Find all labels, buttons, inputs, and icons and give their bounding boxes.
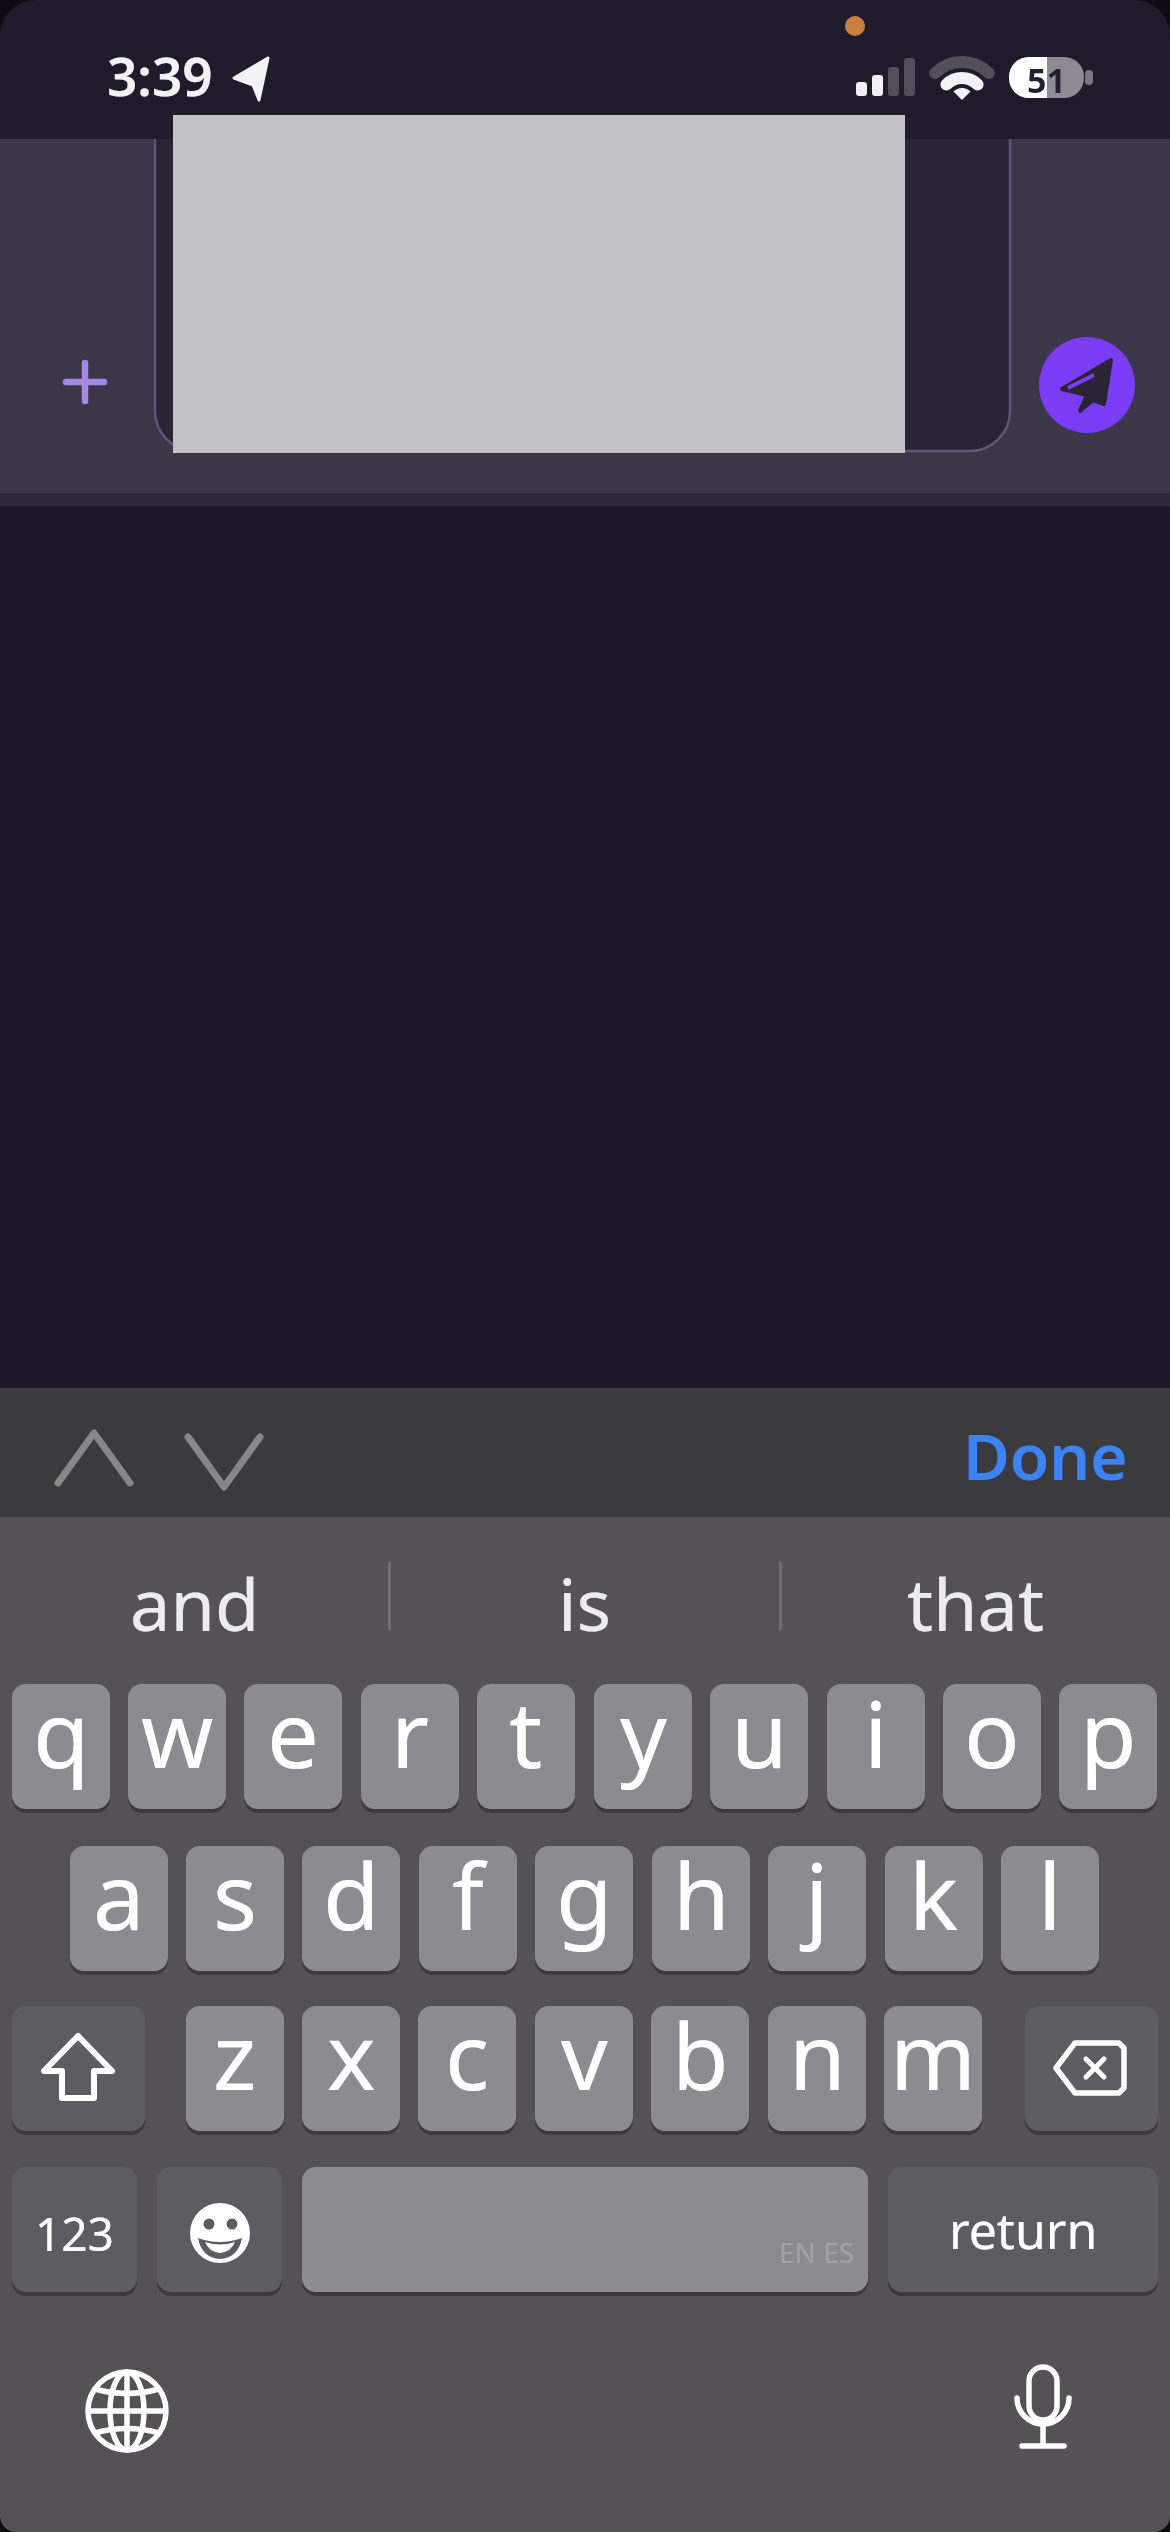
button[interactable]: z: [186, 2006, 284, 2131]
button[interactable]: j: [768, 1846, 866, 1971]
button[interactable]: p: [1059, 1684, 1157, 1809]
button[interactable]: f: [419, 1846, 517, 1971]
button[interactable]: w: [128, 1684, 226, 1809]
staticText: c: [445, 2006, 490, 2117]
button[interactable]: c: [418, 2006, 516, 2131]
button[interactable]: g: [535, 1846, 633, 1971]
staticText: a: [93, 1846, 145, 1957]
button[interactable]: o: [943, 1684, 1041, 1809]
staticText: p: [1080, 1684, 1137, 1795]
button[interactable]: that: [780, 1545, 1170, 1660]
button[interactable]: x: [302, 2006, 400, 2131]
staticText: v: [561, 2006, 608, 2117]
button[interactable]: t: [477, 1684, 575, 1809]
button[interactable]: [1025, 2006, 1158, 2131]
button[interactable]: e: [244, 1684, 342, 1809]
staticText: j: [805, 1846, 829, 1957]
button[interactable]: u: [710, 1684, 808, 1809]
staticText: s: [213, 1846, 258, 1957]
staticText: u: [731, 1684, 788, 1795]
button[interactable]: return: [888, 2167, 1158, 2292]
staticText: l: [1038, 1846, 1062, 1957]
staticText: o: [964, 1684, 1020, 1795]
button[interactable]: is: [390, 1545, 780, 1660]
button[interactable]: a: [70, 1846, 168, 1971]
button[interactable]: k: [885, 1846, 983, 1971]
button[interactable]: [60, 2345, 195, 2480]
staticText: m: [890, 2006, 977, 2117]
staticText: that: [907, 1554, 1044, 1652]
staticText: n: [789, 2006, 846, 2117]
staticText: x: [327, 2006, 376, 2117]
staticText: t: [509, 1684, 543, 1795]
button[interactable]: v: [535, 2006, 633, 2131]
staticText: is: [558, 1554, 612, 1652]
button[interactable]: r: [361, 1684, 459, 1809]
button[interactable]: q: [12, 1684, 110, 1809]
staticText: y: [620, 1684, 667, 1795]
button[interactable]: [1039, 337, 1135, 433]
staticText: d: [323, 1846, 380, 1957]
button[interactable]: [975, 2345, 1110, 2480]
button[interactable]: and: [0, 1545, 390, 1660]
staticText: EN ES: [779, 2233, 855, 2271]
staticText: 3:39: [107, 39, 213, 101]
staticText: b: [672, 2006, 729, 2117]
staticText: e: [267, 1684, 319, 1795]
button[interactable]: y: [594, 1684, 692, 1809]
button[interactable]: [40, 337, 130, 427]
button[interactable]: n: [768, 2006, 866, 2131]
staticText: and: [130, 1554, 260, 1652]
staticText: g: [556, 1846, 613, 1957]
button[interactable]: 123: [12, 2167, 137, 2292]
button[interactable]: h: [652, 1846, 750, 1971]
staticText: i: [864, 1684, 888, 1795]
staticText: z: [213, 2006, 257, 2117]
button[interactable]: d: [302, 1846, 400, 1971]
button[interactable]: b: [651, 2006, 749, 2131]
staticText: 51: [1027, 57, 1066, 98]
staticText: return: [949, 2196, 1098, 2264]
button[interactable]: l: [1001, 1846, 1099, 1971]
button[interactable]: i: [827, 1684, 925, 1809]
staticText: q: [33, 1684, 90, 1795]
staticText: Done: [963, 1412, 1128, 1499]
staticText: h: [673, 1846, 730, 1957]
staticText: 123: [35, 2202, 114, 2265]
staticText: w: [141, 1684, 214, 1795]
staticText: k: [909, 1846, 959, 1957]
button[interactable]: s: [186, 1846, 284, 1971]
button[interactable]: [157, 2167, 282, 2292]
button[interactable]: m: [884, 2006, 982, 2131]
staticText: r: [391, 1684, 429, 1795]
staticText: f: [452, 1846, 484, 1957]
button[interactable]: [12, 2006, 145, 2131]
button[interactable]: [302, 2167, 868, 2292]
button[interactable]: Done: [940, 1399, 1150, 1511]
